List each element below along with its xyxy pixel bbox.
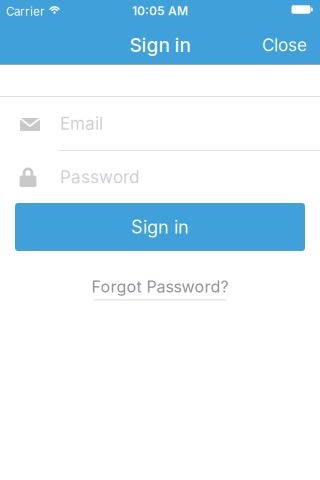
- button[interactable]: Close: [262, 35, 320, 55]
- staticText: Email: [60, 113, 103, 134]
- staticText: Carrier: [6, 4, 44, 18]
- staticText: Close: [262, 35, 307, 55]
- staticText: Sign in: [131, 216, 189, 238]
- staticText: Sign in: [129, 33, 190, 56]
- button[interactable]: Email: [0, 97, 320, 150]
- staticText: Forgot Password?: [91, 277, 228, 296]
- staticText: 10:05 AM: [132, 4, 188, 18]
- button[interactable]: Forgot Password?: [91, 277, 228, 300]
- button[interactable]: Sign in: [15, 203, 305, 251]
- staticText: Password: [60, 167, 139, 187]
- button[interactable]: Password: [0, 151, 320, 203]
